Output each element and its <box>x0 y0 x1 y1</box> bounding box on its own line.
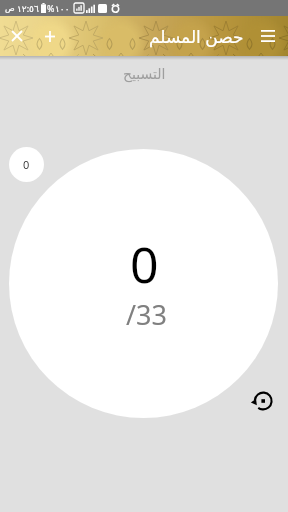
button[interactable]: 0 <box>9 149 278 418</box>
staticText: ‎١٢:٥٦ <box>17 2 39 14</box>
button[interactable]: Menu <box>257 25 279 47</box>
staticText: ‎% <box>47 2 55 14</box>
staticText: ‎١٠٠ <box>55 2 70 14</box>
button[interactable]: 0 <box>9 147 44 182</box>
staticText: التسبيح <box>123 66 166 82</box>
staticText: ص <box>5 4 15 13</box>
staticText: حصن المسلم <box>149 25 244 48</box>
staticText: 0 <box>130 230 159 298</box>
staticText: 0 <box>23 157 30 172</box>
button[interactable]: Close <box>5 24 29 48</box>
button[interactable]: Add <box>38 24 62 48</box>
button[interactable]: Reset counter <box>246 386 276 416</box>
staticText: /33 <box>126 296 167 333</box>
